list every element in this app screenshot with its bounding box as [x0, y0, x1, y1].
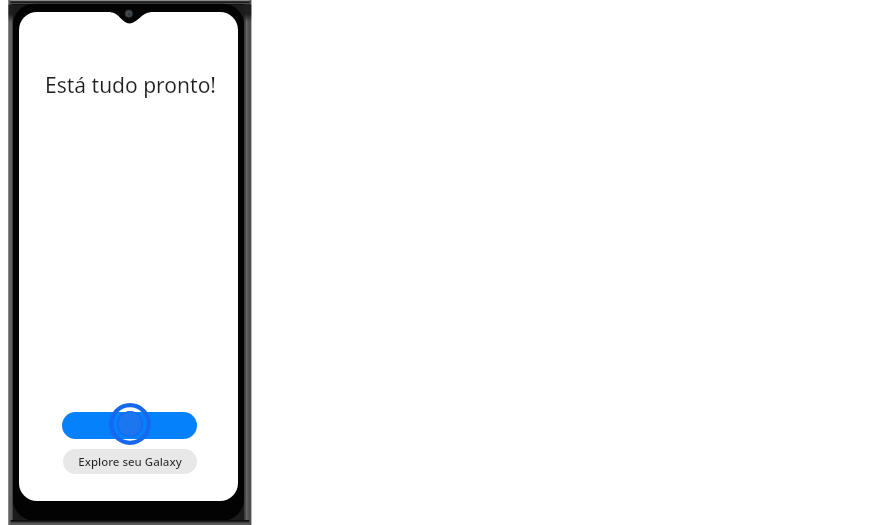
other: Touch point — [104, 398, 156, 450]
staticText: Está tudo pronto! — [45, 71, 216, 100]
staticText: Explore seu Galaxy — [78, 454, 182, 470]
button[interactable]: Continuar — [62, 412, 197, 439]
button[interactable]: Explore seu Galaxy — [63, 449, 197, 474]
